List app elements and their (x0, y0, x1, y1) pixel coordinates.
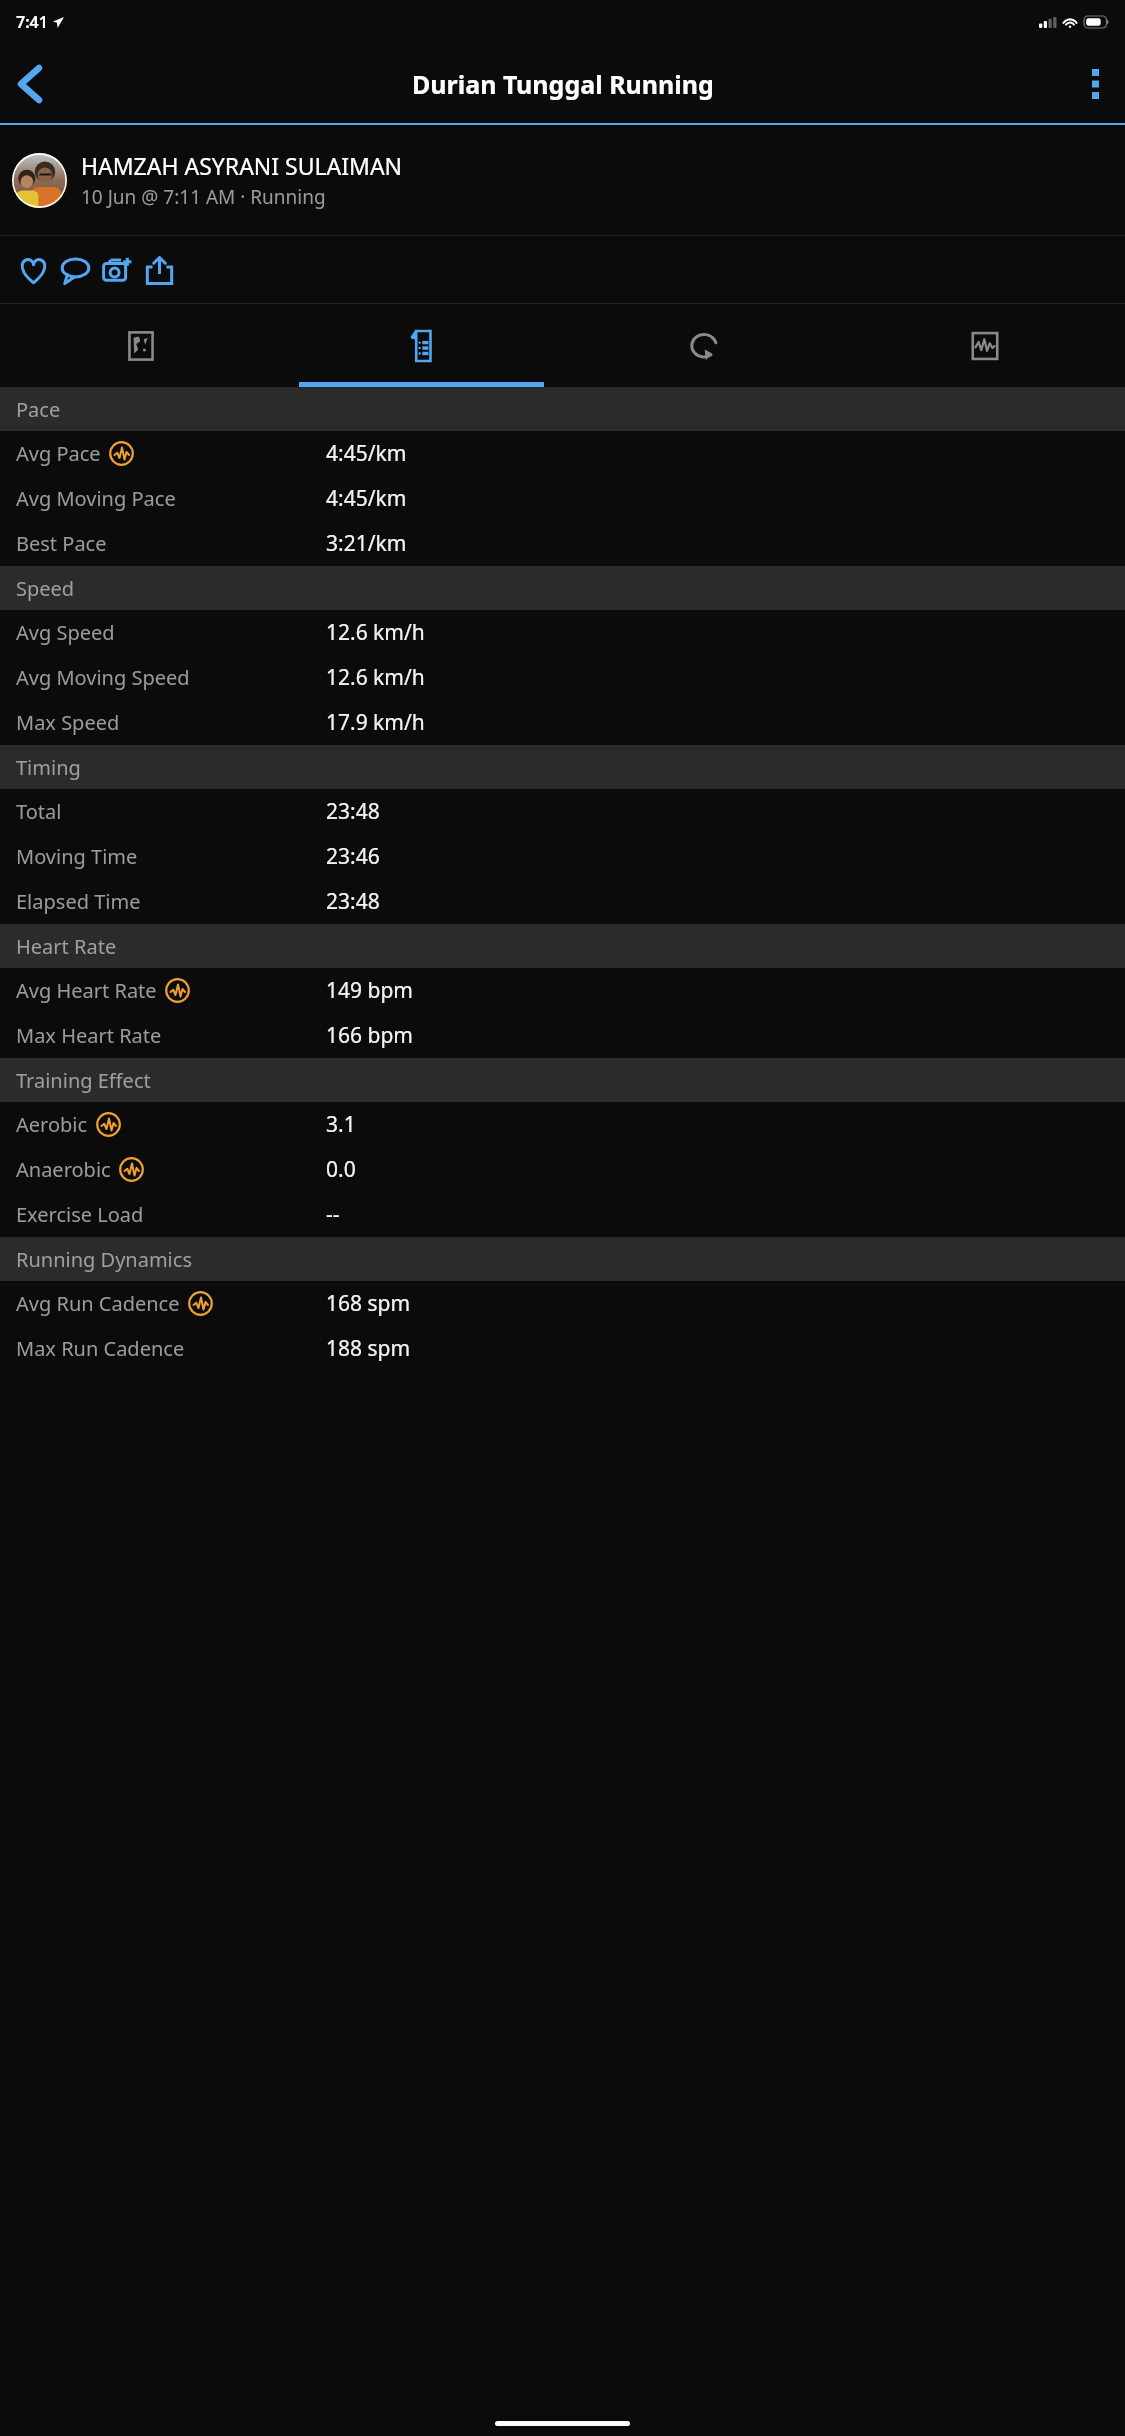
staticText: 3.1 (326, 1110, 356, 1139)
staticText: Pace (16, 396, 61, 423)
button[interactable]: Like (12, 249, 54, 291)
staticText: 3:21/km (326, 529, 407, 558)
staticText: 4:45/km (326, 439, 407, 468)
staticText: Avg Heart Rate (16, 977, 157, 1004)
button[interactable]: Avg Run Cadence (0, 1281, 1125, 1326)
button[interactable]: Back (0, 54, 60, 114)
staticText: Best Pace (16, 530, 107, 557)
staticText: 0.0 (326, 1155, 356, 1184)
button[interactable]: Avg Moving Pace (0, 476, 1125, 521)
staticText: Max Speed (16, 709, 120, 736)
staticText: Training Effect (16, 1067, 151, 1094)
button[interactable]: Max Heart Rate (0, 1013, 1125, 1058)
staticText: 10 Jun @ 7:11 AM · Running (81, 184, 326, 210)
button[interactable]: Max Speed (0, 700, 1125, 745)
button[interactable]: Best Pace (0, 521, 1125, 566)
staticText: 149 bpm (326, 976, 413, 1005)
staticText: Heart Rate (16, 933, 117, 960)
button[interactable]: Charts (844, 304, 1125, 387)
button[interactable]: Aerobic (0, 1102, 1125, 1147)
button[interactable]: Map (0, 304, 282, 387)
staticText: 166 bpm (326, 1021, 413, 1050)
button[interactable]: Laps (563, 304, 844, 387)
staticText: 7:41 (16, 11, 48, 33)
button[interactable]: Add photo (96, 249, 138, 291)
button[interactable]: Moving Time (0, 834, 1125, 879)
staticText: 12.6 km/h (326, 663, 425, 692)
staticText: Running Dynamics (16, 1246, 192, 1273)
staticText: 23:48 (326, 797, 380, 826)
staticText: Durian Tunggal Running (412, 67, 714, 101)
staticText: Aerobic (16, 1111, 88, 1138)
staticText: Exercise Load (16, 1201, 144, 1228)
staticText: Avg Speed (16, 619, 115, 646)
staticText: 17.9 km/h (326, 708, 425, 737)
button[interactable]: Comment (54, 249, 96, 291)
staticText: Avg Run Cadence (16, 1290, 180, 1317)
staticText: Moving Time (16, 843, 138, 870)
button[interactable]: Exercise Load (0, 1192, 1125, 1237)
staticText: 12.6 km/h (326, 618, 425, 647)
staticText: 23:46 (326, 842, 380, 871)
staticText: Speed (16, 575, 75, 602)
button[interactable]: Avg Heart Rate (0, 968, 1125, 1013)
staticText: Avg Moving Speed (16, 664, 190, 691)
button[interactable]: Max Run Cadence (0, 1326, 1125, 1371)
button[interactable]: Total (0, 789, 1125, 834)
button[interactable]: HAMZAH ASYRANI SULAIMAN (0, 125, 1125, 235)
staticText: Avg Moving Pace (16, 485, 176, 512)
button[interactable]: More options (1065, 54, 1125, 114)
staticText: Elapsed Time (16, 888, 141, 915)
button[interactable]: Share (138, 249, 180, 291)
staticText: 188 spm (326, 1334, 411, 1363)
staticText: Max Run Cadence (16, 1335, 185, 1362)
staticText: HAMZAH ASYRANI SULAIMAN (81, 150, 403, 181)
button[interactable]: Elapsed Time (0, 879, 1125, 924)
staticText: -- (326, 1200, 340, 1229)
button[interactable]: Avg Moving Speed (0, 655, 1125, 700)
staticText: 168 spm (326, 1289, 411, 1318)
button[interactable]: Details (282, 304, 563, 387)
staticText: Anaerobic (16, 1156, 111, 1183)
staticText: Total (16, 798, 62, 825)
button[interactable]: Avg Pace (0, 431, 1125, 476)
staticText: Avg Pace (16, 440, 101, 467)
button[interactable]: Anaerobic (0, 1147, 1125, 1192)
staticText: 4:45/km (326, 484, 407, 513)
staticText: Timing (16, 754, 81, 781)
button[interactable]: Avg Speed (0, 610, 1125, 655)
staticText: Max Heart Rate (16, 1022, 162, 1049)
staticText: 23:48 (326, 887, 380, 916)
